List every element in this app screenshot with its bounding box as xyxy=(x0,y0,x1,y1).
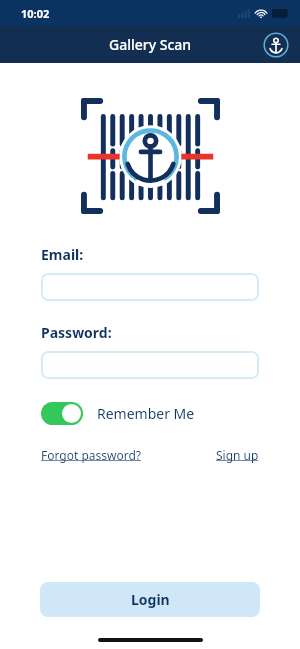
button[interactable]: Remember Me toggle xyxy=(41,402,83,425)
staticText: Forgot password? xyxy=(41,447,142,463)
staticText: Gallery Scan xyxy=(109,35,192,54)
button[interactable]: Account xyxy=(263,32,289,58)
button[interactable]: Sign up xyxy=(216,447,259,463)
staticText: Remember Me xyxy=(97,404,195,423)
staticText: Password: xyxy=(41,323,112,342)
button[interactable] xyxy=(41,273,259,301)
staticText: Login xyxy=(131,590,170,609)
button[interactable] xyxy=(41,351,259,379)
staticText: 10:02 xyxy=(21,6,50,21)
staticText: Email: xyxy=(41,245,84,264)
staticText: Sign up xyxy=(216,447,259,463)
button[interactable]: Login xyxy=(40,582,260,617)
button[interactable]: Forgot password? xyxy=(41,447,142,463)
